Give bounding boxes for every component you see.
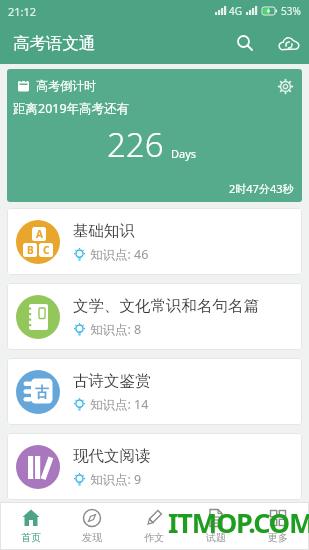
staticText: 古 [35, 384, 49, 402]
button[interactable]: 作文 [123, 502, 185, 550]
button[interactable]: 古 [7, 358, 302, 425]
button[interactable]: 高考倒计时 [7, 69, 302, 202]
button[interactable]: 试题 [185, 502, 247, 550]
button[interactable]: 发现 [61, 502, 123, 550]
staticText: 试题 [206, 531, 226, 544]
button[interactable]: 现代文阅读 [7, 433, 302, 500]
button[interactable]: 更多 [247, 502, 309, 550]
staticText: 更多 [268, 531, 288, 544]
staticText: 距离2019年高考还有 [13, 100, 130, 117]
staticText: 作文 [144, 531, 164, 544]
button[interactable]: 文学、文化常识和名句名篇 [7, 283, 302, 350]
button[interactable] [271, 25, 307, 61]
staticText: 知识点: 9 [90, 471, 142, 488]
staticText: 2时47分43秒 [229, 181, 294, 196]
button[interactable]: A [7, 208, 302, 275]
staticText: A [36, 227, 43, 241]
staticText: 21:12 [8, 4, 37, 19]
staticText: 226 [107, 122, 164, 167]
staticText: 发现 [82, 531, 102, 544]
staticText: 现代文阅读 [73, 446, 151, 466]
staticText: 高考语文通 [13, 33, 96, 54]
staticText: 首页 [21, 531, 41, 544]
staticText: 知识点: 14 [90, 396, 149, 413]
staticText: 文学、文化常识和名句名篇 [73, 296, 259, 316]
staticText: 古诗文鉴赏 [73, 371, 151, 391]
button[interactable] [227, 25, 263, 61]
staticText: 知识点: 46 [90, 246, 149, 263]
button[interactable]: 首页 [0, 502, 61, 550]
staticText: 高考倒计时 [36, 78, 96, 93]
staticText: 53% [281, 4, 301, 18]
staticText: B [27, 243, 34, 257]
staticText: ITMOP.COM [168, 504, 309, 541]
staticText: C [43, 243, 50, 257]
staticText: 知识点: 8 [90, 321, 142, 338]
staticText: Days [171, 146, 197, 161]
staticText: 4G [229, 4, 242, 18]
staticText: 基础知识 [73, 221, 135, 241]
